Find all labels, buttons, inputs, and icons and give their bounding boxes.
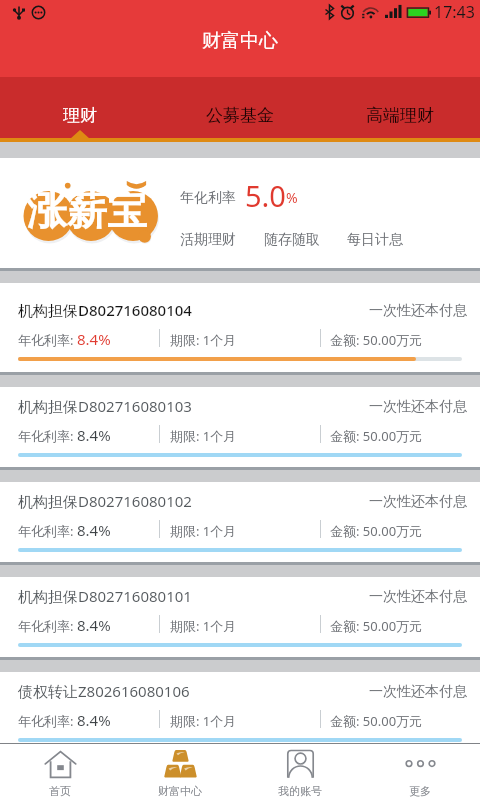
button[interactable]: 首页 (0, 744, 120, 800)
staticText: 期限: 1个月 (170, 617, 237, 635)
staticText: 金额: 50.00万元 (330, 522, 423, 540)
staticText: 期限: 1个月 (170, 427, 237, 445)
staticText: 涨薪宝 (27, 185, 147, 235)
staticText: 期限: 1个月 (170, 331, 237, 349)
staticText: 8.4% (77, 425, 111, 445)
staticText: 机构担保D802716080102 (18, 491, 192, 511)
staticText: 期限: 1个月 (170, 712, 237, 730)
staticText: 8.4% (77, 615, 111, 635)
staticText: 一次性还本付息 (369, 588, 467, 606)
staticText: 每日计息 (347, 231, 403, 249)
staticText: 8.4% (77, 329, 111, 349)
button[interactable]: 机构担保D802716080101 (0, 573, 480, 658)
staticText: 年化利率 (180, 189, 236, 207)
button[interactable]: 我的账号 (240, 744, 360, 800)
staticText: 财富中心 (202, 29, 278, 53)
button[interactable]: 高端理财 (320, 77, 480, 138)
staticText: 金额: 50.00万元 (330, 712, 423, 730)
staticText: 年化利率: (18, 331, 77, 349)
staticText: 机构担保D802716080101 (18, 586, 192, 606)
staticText: 8.4% (77, 710, 111, 730)
staticText: 机构担保D802716080103 (18, 396, 192, 416)
staticText: 期限: 1个月 (170, 522, 237, 540)
button[interactable]: 债权转让Z802616080106 (0, 668, 480, 753)
staticText: 金额: 50.00万元 (330, 427, 423, 445)
staticText: 5.0 (245, 176, 286, 215)
staticText: 随存随取 (264, 231, 320, 249)
staticText: 17:43 (434, 1, 475, 23)
button[interactable]: 理财 (0, 77, 160, 138)
button[interactable]: 公募基金 (160, 77, 320, 138)
staticText: 一次性还本付息 (369, 302, 467, 320)
staticText: 金额: 50.00万元 (330, 617, 423, 635)
button[interactable]: 财富中心 (120, 744, 240, 800)
staticText: 一次性还本付息 (369, 398, 467, 416)
staticText: 年化利率: (18, 522, 77, 540)
staticText: 年化利率: (18, 712, 77, 730)
staticText: 公募基金 (206, 105, 274, 126)
staticText: 8.4% (77, 520, 111, 540)
staticText: % (286, 188, 298, 207)
staticText: 债权转让Z802616080106 (18, 681, 190, 701)
staticText: 首页 (49, 784, 71, 798)
button[interactable]: 涨薪宝 (0, 158, 480, 268)
button[interactable]: 机构担保D802716080104 (0, 287, 480, 372)
staticText: 财富中心 (158, 784, 202, 798)
button[interactable]: 机构担保D802716080103 (0, 383, 480, 468)
staticText: 一次性还本付息 (369, 683, 467, 701)
staticText: 更多 (409, 784, 431, 798)
staticText: 活期理财 (180, 231, 236, 249)
staticText: 机构担保D802716080104 (18, 300, 192, 320)
staticText: 年化利率: (18, 617, 77, 635)
button[interactable]: 机构担保D802716080102 (0, 478, 480, 563)
staticText: 理财 (63, 105, 97, 126)
staticText: 高端理财 (366, 105, 434, 126)
staticText: 我的账号 (278, 784, 322, 798)
staticText: 年化利率: (18, 427, 77, 445)
staticText: 金额: 50.00万元 (330, 331, 423, 349)
button[interactable]: 更多 (360, 744, 480, 800)
staticText: 一次性还本付息 (369, 493, 467, 511)
